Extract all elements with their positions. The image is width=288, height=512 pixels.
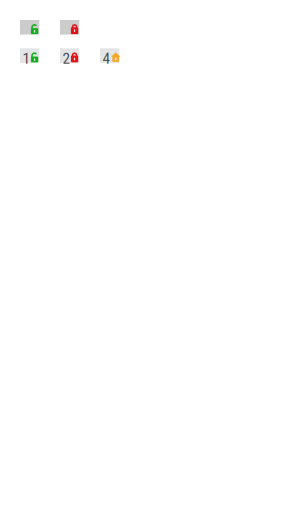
staticText: 1: [23, 49, 31, 67]
staticText: 2: [63, 49, 71, 67]
staticText: 4: [103, 49, 111, 67]
